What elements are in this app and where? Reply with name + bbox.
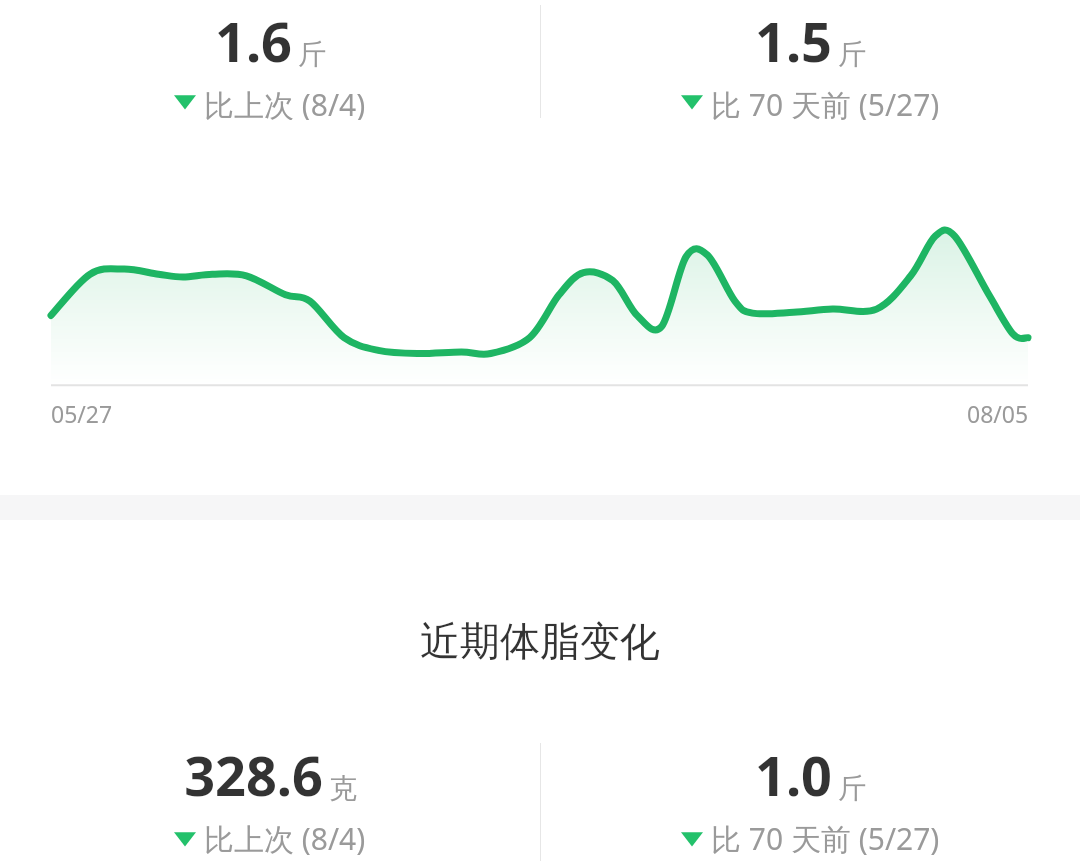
- staticText: 比上次 (8/4): [204, 84, 366, 120]
- button[interactable]: 1.5: [540, 0, 1080, 120]
- staticText: 1.0: [755, 738, 832, 812]
- staticText: 1.5: [755, 4, 832, 78]
- staticText: 克: [329, 771, 357, 806]
- button[interactable]: 1.0: [540, 734, 1080, 864]
- staticText: 斤: [838, 771, 866, 806]
- staticText: 05/27: [51, 398, 113, 429]
- staticText: 328.6: [184, 738, 323, 812]
- staticText: 比 70 天前 (5/27): [711, 84, 940, 120]
- staticText: 08/05: [967, 398, 1029, 429]
- staticText: 斤: [298, 37, 326, 72]
- staticText: 比上次 (8/4): [204, 818, 366, 859]
- staticText: 近期体脂变化: [420, 616, 660, 666]
- button[interactable]: 1.6: [0, 0, 540, 120]
- other: Decrease: [174, 830, 196, 848]
- other: Decrease: [174, 93, 196, 111]
- other: Decrease: [681, 93, 703, 111]
- button[interactable]: 328.6: [0, 734, 540, 864]
- staticText: 1.6: [215, 4, 292, 78]
- staticText: 比 70 天前 (5/27): [711, 818, 940, 859]
- other: Decrease: [681, 830, 703, 848]
- staticText: 斤: [838, 37, 866, 72]
